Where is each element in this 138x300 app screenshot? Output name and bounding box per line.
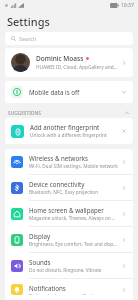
staticText: HUAWEI ID, Cloud, AppGallery and others xyxy=(36,64,118,71)
button[interactable]: Display xyxy=(5,227,133,252)
staticText: Magazine unlock, Themes, Always on displ… xyxy=(29,215,118,221)
staticText: 10:37 xyxy=(121,2,134,9)
button[interactable]: Dominic Moass xyxy=(5,48,133,77)
staticText: Mobile data is off xyxy=(29,88,121,96)
staticText: Search xyxy=(19,35,37,42)
other: Collapse xyxy=(121,89,127,95)
staticText: Wireless & networks xyxy=(29,154,89,162)
button[interactable]: Sounds xyxy=(5,253,133,278)
staticText: Settings xyxy=(7,14,50,29)
button[interactable]: Device connectivity xyxy=(5,175,133,200)
staticText: Dominic Moass xyxy=(36,54,84,63)
staticText: Sounds xyxy=(29,258,51,266)
staticText: Display xyxy=(29,232,51,240)
button[interactable]: Mobile data is off xyxy=(5,81,133,103)
button[interactable]: Add another fingerprint xyxy=(5,118,133,144)
staticText: Home screen & wallpaper xyxy=(29,206,104,214)
staticText: Do not disturb, Ringtone, Vibrate xyxy=(29,267,102,273)
staticText: Unlock with a different fingerprint xyxy=(30,132,107,139)
staticText: Device connectivity xyxy=(29,180,85,188)
button[interactable]: Notifications xyxy=(5,279,133,300)
staticText: Wi-Fi, Dual SIM settings, Mobile network xyxy=(29,163,118,169)
button[interactable]: Search settings xyxy=(5,32,133,45)
staticText: Bluetooth, NFC, Easy projection xyxy=(29,189,99,195)
button[interactable]: Home screen & wallpaper xyxy=(5,201,133,226)
button[interactable]: Collapse suggestions xyxy=(124,110,130,116)
button[interactable]: Dismiss suggestion xyxy=(121,128,127,134)
button[interactable]: Wireless & networks xyxy=(5,149,133,174)
staticText: Notifications xyxy=(29,284,66,292)
staticText: SUGGESTIONS xyxy=(8,110,124,117)
staticText: Brightness, Eye comfort, Text and displa… xyxy=(29,241,118,247)
staticText: Add another fingerprint xyxy=(30,123,100,131)
staticText: Badges, Lock screen notifications xyxy=(29,293,103,295)
